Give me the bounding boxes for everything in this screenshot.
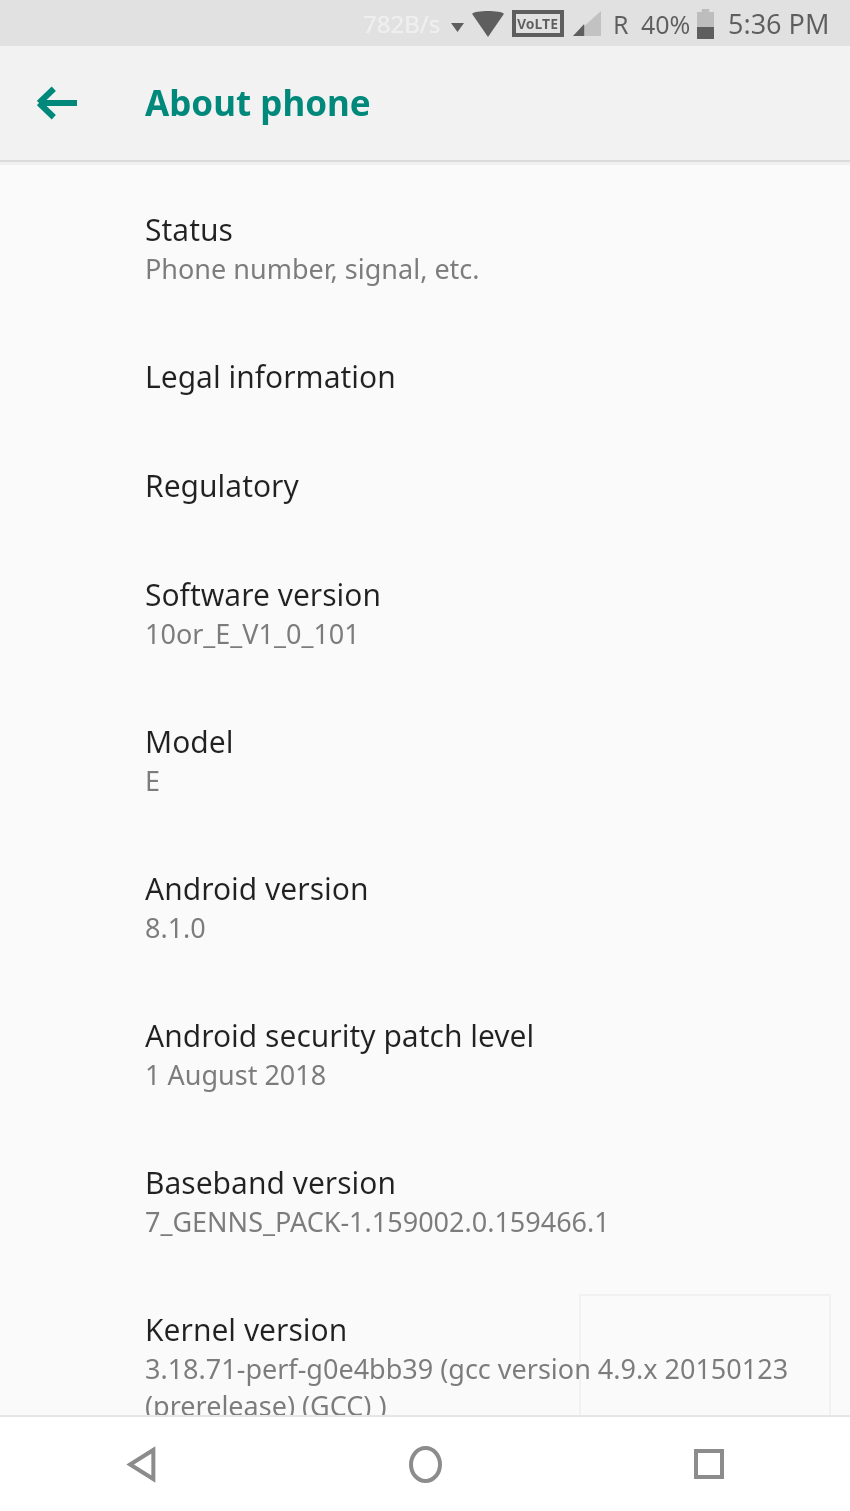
staticText: 1 August 2018	[145, 1056, 327, 1093]
staticText: Software version	[145, 574, 382, 615]
staticText: Kernel version	[145, 1309, 348, 1350]
staticText: 7_GENNS_PACK-1.159002.0.159466.1	[145, 1203, 610, 1240]
staticText: 40%	[641, 7, 691, 41]
button[interactable]: Legal information	[0, 342, 850, 451]
staticText: Phone number, signal, etc.	[145, 250, 480, 287]
staticText: Baseband version	[145, 1162, 397, 1203]
staticText: R	[613, 7, 629, 41]
staticText: About phone	[145, 79, 371, 127]
button[interactable]: Home	[284, 1417, 567, 1511]
staticText: Android security patch level	[145, 1015, 535, 1056]
button[interactable]: Android version	[0, 854, 850, 1001]
staticText: (prerelease) (GCC) )	[145, 1387, 387, 1415]
staticText: Model	[145, 721, 234, 762]
button[interactable]: Recent apps	[567, 1417, 850, 1511]
staticText: 8.1.0	[145, 909, 206, 946]
button[interactable]: Navigate up	[20, 66, 94, 140]
button[interactable]: Android security patch level	[0, 1001, 850, 1148]
staticText: E	[145, 762, 161, 799]
button[interactable]: Model	[0, 707, 850, 854]
staticText: Regulatory	[145, 465, 299, 506]
staticText: 5:36 PM	[728, 5, 830, 42]
button[interactable]: Kernel version	[0, 1295, 850, 1415]
button[interactable]: Status	[0, 195, 850, 342]
button[interactable]: Software version	[0, 560, 850, 707]
button[interactable]: Back	[0, 1417, 284, 1511]
staticText: VoLTE	[517, 14, 559, 33]
staticText: Android version	[145, 868, 369, 909]
button[interactable]: Baseband version	[0, 1148, 850, 1295]
staticText: Legal information	[145, 356, 396, 397]
staticText: 3.18.71-perf-g0e4bb39 (gcc version 4.9.x…	[145, 1350, 789, 1387]
staticText: 782B/s	[363, 7, 441, 40]
staticText: 10or_E_V1_0_101	[145, 615, 360, 652]
staticText: Status	[145, 209, 233, 250]
button[interactable]: Regulatory	[0, 451, 850, 560]
